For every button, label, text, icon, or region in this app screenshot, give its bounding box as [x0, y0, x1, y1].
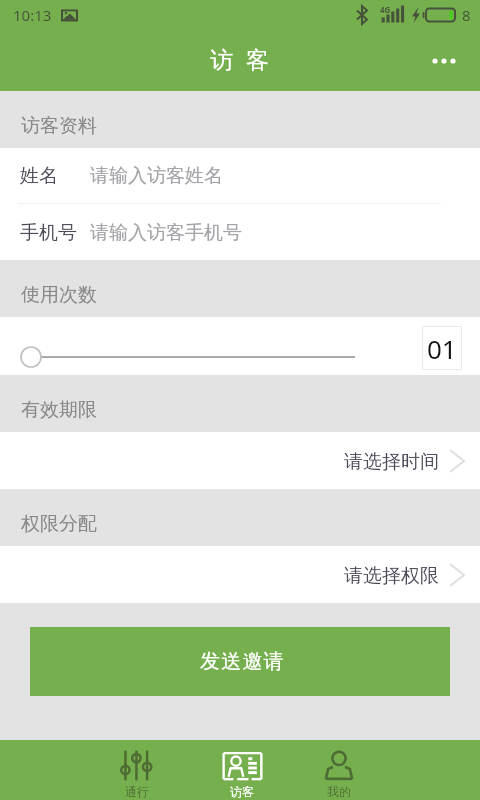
button[interactable]: 发送邀请 — [30, 627, 450, 696]
staticText: 发送邀请 — [200, 649, 285, 674]
staticText: 请输入访客姓名 — [90, 164, 223, 188]
staticText: 通行 — [125, 784, 149, 799]
staticText: 权限分配 — [21, 512, 97, 536]
staticText: 有效期限 — [21, 398, 97, 422]
button[interactable]: 我的 — [293, 740, 385, 800]
staticText: 4G — [380, 4, 391, 15]
button[interactable]: More options — [422, 39, 466, 83]
staticText: 访客资料 — [21, 114, 97, 138]
staticText: 我的 — [327, 784, 351, 799]
staticText: 访 客 — [210, 43, 273, 74]
staticText: 10:13 — [13, 5, 52, 25]
button[interactable]: 访客 — [193, 740, 291, 800]
button[interactable]: 请选择权限 — [0, 546, 480, 603]
staticText: 01 — [427, 331, 457, 366]
button[interactable]: 通行 — [89, 740, 185, 800]
staticText: 访客 — [230, 784, 254, 799]
staticText: 请选择时间 — [344, 450, 439, 474]
staticText: 请输入访客手机号 — [90, 221, 242, 245]
staticText: 请选择权限 — [344, 564, 439, 588]
staticText: 姓名 — [20, 164, 58, 188]
button[interactable]: 手机号 — [0, 205, 480, 260]
button[interactable]: Usage count slider — [0, 317, 480, 375]
button[interactable]: 请选择时间 — [0, 432, 480, 489]
staticText: 手机号 — [20, 221, 77, 245]
staticText: 8 — [462, 5, 471, 25]
staticText: 使用次数 — [21, 283, 97, 307]
button[interactable]: 姓名 — [0, 148, 480, 203]
